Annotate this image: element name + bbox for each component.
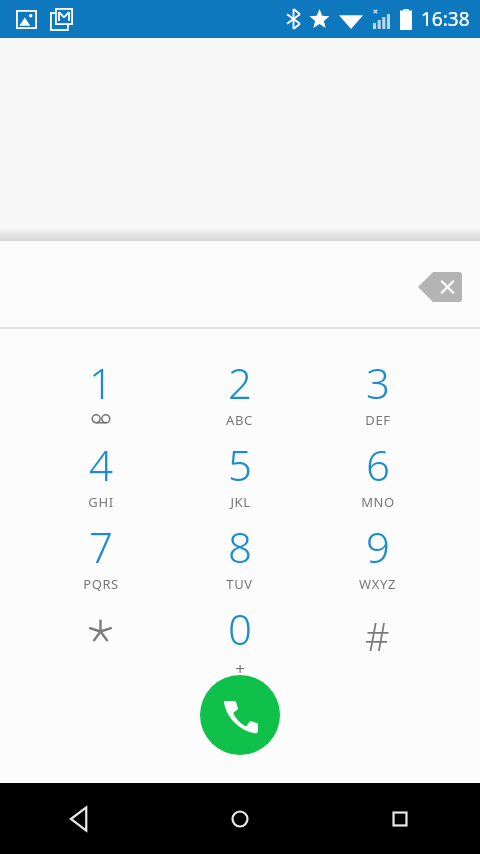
button[interactable]: Recents [320, 783, 480, 854]
button[interactable]: Back [0, 783, 160, 854]
staticText: 3 [366, 354, 390, 411]
button[interactable]: 0 [170, 600, 309, 682]
staticText: 4 [89, 436, 113, 493]
button[interactable]: 8 [170, 518, 309, 600]
button[interactable]: Pound [308, 600, 447, 682]
staticText: WXYZ [359, 575, 396, 593]
button[interactable]: 6 [308, 436, 447, 518]
staticText: 1 [89, 354, 113, 411]
staticText: 16:38 [421, 6, 470, 32]
button[interactable]: 3 [308, 354, 447, 436]
button[interactable]: 9 [308, 518, 447, 600]
staticText: 7 [89, 518, 113, 575]
staticText: # [365, 610, 390, 662]
button[interactable]: Call [200, 675, 280, 755]
button[interactable]: Star [31, 600, 170, 682]
staticText: MNO [361, 493, 395, 511]
staticText: DEF [365, 411, 391, 429]
button[interactable]: 2 [170, 354, 309, 436]
staticText: ABC [226, 411, 253, 429]
staticText: 8 [228, 518, 252, 575]
button[interactable]: 5 [170, 436, 309, 518]
staticText: TUV [226, 575, 253, 593]
button[interactable]: 1 [31, 354, 170, 436]
staticText: 5 [228, 436, 252, 493]
staticText: GHI [88, 493, 114, 511]
staticText: JKL [230, 493, 251, 511]
button[interactable]: 4 [31, 436, 170, 518]
staticText: 9 [366, 518, 390, 575]
button[interactable]: 7 [31, 518, 170, 600]
button[interactable]: Backspace [414, 264, 466, 310]
staticText: 6 [366, 436, 390, 493]
staticText: PQRS [83, 575, 119, 593]
button[interactable]: Home [160, 783, 320, 854]
staticText: 0 [228, 600, 252, 657]
staticText: 2 [228, 354, 252, 411]
staticText: + [235, 657, 246, 680]
